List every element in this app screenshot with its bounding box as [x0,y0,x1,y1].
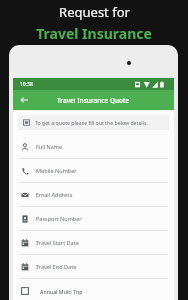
staticText: Mobile Number [36,167,77,174]
button[interactable]: Annual Multi Trip [13,279,174,300]
staticText: Travel Start Date [36,239,79,246]
staticText: Travel Insurance Quote [57,96,130,105]
button[interactable]: Mobile Number [13,159,174,183]
button[interactable]: Travel End Date [13,255,174,279]
staticText: Passport Number [36,215,82,222]
button[interactable]: Back [17,93,31,107]
button[interactable]: Passport Number [13,207,174,231]
staticText: Email Address [36,191,73,198]
staticText: Travel End Date [36,263,77,270]
staticText: Request for [59,3,130,21]
staticText: Travel Insurance [36,24,152,43]
staticText: 10:38 [20,81,33,88]
staticText: Annual Multi Trip [40,288,83,295]
staticText: To get a quote please fill out the below… [35,119,148,126]
button[interactable]: Full Name [13,135,174,159]
button[interactable]: Email Address [13,183,174,207]
button[interactable]: Travel Start Date [13,231,174,255]
staticText: Full Name [36,143,63,150]
